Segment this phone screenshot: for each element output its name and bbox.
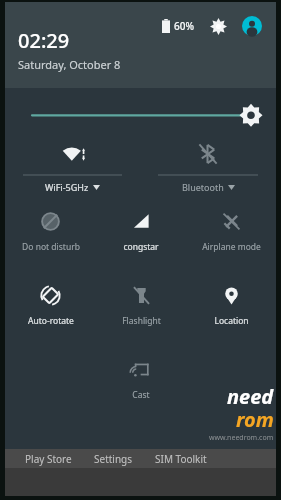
staticText: 60% [174,19,194,33]
staticText: 02:29 [18,27,70,54]
staticText: Saturday, October 8 [18,57,121,72]
button[interactable]: Auto-rotate [5,272,96,346]
staticText: www.needrom.com [209,433,274,443]
button[interactable]: Play Store [25,452,94,466]
button[interactable]: Bluetooth [140,132,276,198]
button[interactable]: Brightness [5,88,276,132]
staticText: Bluetooth [182,181,224,193]
staticText: Play Store [25,452,72,466]
button[interactable]: Flashlight [96,272,186,346]
staticText: Do not disturb [22,241,80,253]
staticText: Auto-rotate [28,315,74,327]
staticText: congstar [123,241,159,253]
button[interactable]: Settings [94,452,155,466]
button[interactable]: congstar [96,198,186,272]
staticText: SIM Toolkit [155,452,207,466]
staticText: Settings [94,452,133,466]
staticText: rom [236,406,274,433]
staticText: need [227,383,274,410]
staticText: WiFi-5GHz [45,181,89,193]
button[interactable]: Airplane mode [186,198,276,272]
staticText: Cast [132,389,150,401]
button[interactable]: Do not disturb [5,198,96,272]
button[interactable]: SIM Toolkit [155,452,229,466]
button[interactable]: Cast [96,346,186,402]
button[interactable]: Location [186,272,276,346]
staticText: Location [214,315,249,327]
staticText: Airplane mode [202,241,261,253]
button[interactable]: WiFi-5GHz [5,132,140,198]
button[interactable]: User profile [240,14,264,38]
button[interactable]: Settings [206,14,230,38]
staticText: Flashlight [122,315,161,327]
